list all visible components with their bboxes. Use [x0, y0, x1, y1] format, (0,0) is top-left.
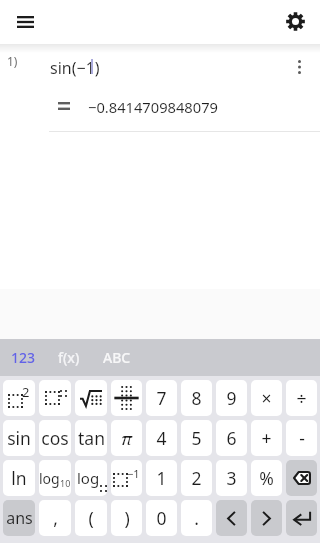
staticText: 4 — [156, 426, 167, 450]
button[interactable]: 3 — [216, 460, 247, 496]
staticText: cos — [41, 426, 69, 450]
button[interactable]: ( — [75, 500, 107, 536]
staticText: , — [53, 506, 58, 530]
staticText: π — [121, 427, 132, 450]
button[interactable]: + — [251, 420, 282, 456]
button[interactable]: Square — [3, 380, 35, 416]
button[interactable]: 7 — [146, 380, 177, 416]
button[interactable]: f(x) — [58, 339, 103, 376]
button[interactable]: ln — [3, 460, 35, 496]
button[interactable]: - — [286, 420, 317, 456]
button[interactable]: Fraction — [111, 380, 142, 416]
staticText: 8 — [191, 386, 202, 410]
button[interactable]: Right — [251, 500, 282, 536]
button[interactable]: tan — [75, 420, 107, 456]
staticText: × — [261, 386, 272, 410]
staticText: 1 — [156, 466, 167, 490]
staticText: 6 — [226, 426, 237, 450]
button[interactable]: More options — [285, 53, 313, 81]
button[interactable]: sin — [3, 420, 35, 456]
button[interactable]: ABC — [103, 339, 153, 376]
button[interactable]: 8 — [181, 380, 212, 416]
staticText: + — [261, 426, 272, 450]
staticText: ÷ — [296, 386, 307, 410]
button[interactable]: 4 — [146, 420, 177, 456]
staticText: 2 — [22, 383, 30, 401]
button[interactable]: log base 10 — [39, 460, 71, 496]
staticText: 0 — [156, 506, 167, 530]
button[interactable]: Power — [39, 380, 71, 416]
staticText: 10 — [60, 477, 71, 489]
staticText: sin(−1) — [50, 57, 100, 79]
staticText: ) — [124, 506, 130, 530]
staticText: 3 — [226, 466, 237, 490]
button[interactable]: log base — [75, 460, 107, 496]
button[interactable]: × — [251, 380, 282, 416]
button[interactable]: π — [111, 420, 142, 456]
staticText: - — [299, 426, 305, 450]
button[interactable]: 6 — [216, 420, 247, 456]
staticText: log — [77, 468, 100, 488]
staticText: ABC — [103, 348, 131, 367]
staticText: sin — [7, 426, 31, 450]
staticText: 123 — [11, 348, 36, 367]
button[interactable]: Backspace — [286, 460, 317, 496]
button[interactable]: ÷ — [286, 380, 317, 416]
staticText: 1) — [7, 53, 18, 69]
staticText: . — [194, 506, 199, 530]
staticText: ans — [6, 507, 33, 529]
button[interactable]: , — [39, 500, 71, 536]
button[interactable]: ans — [3, 500, 35, 536]
button[interactable]: 0 — [146, 500, 177, 536]
staticText: f(x) — [58, 348, 80, 367]
button[interactable]: 9 — [216, 380, 247, 416]
staticText: 2 — [191, 466, 202, 490]
button[interactable]: ) — [111, 500, 142, 536]
staticText: −1 — [127, 466, 140, 481]
button[interactable]: Left — [216, 500, 247, 536]
button[interactable]: Settings — [279, 6, 311, 38]
button[interactable]: 123 — [0, 339, 58, 376]
button[interactable]: cos — [39, 420, 71, 456]
staticText: tan — [78, 426, 105, 450]
button[interactable]: . — [181, 500, 212, 536]
staticText: ln — [11, 466, 27, 490]
button[interactable]: 5 — [181, 420, 212, 456]
button[interactable]: Enter — [286, 500, 317, 536]
staticText: % — [259, 466, 274, 490]
button[interactable]: % — [251, 460, 282, 496]
staticText: 5 — [191, 426, 202, 450]
button[interactable]: 1 — [146, 460, 177, 496]
button[interactable]: Square root — [75, 380, 107, 416]
button[interactable]: Inverse — [111, 460, 142, 496]
staticText: 9 — [226, 386, 237, 410]
button[interactable]: Menu — [9, 6, 41, 38]
staticText: log — [39, 469, 60, 488]
staticText: −0.8414709848079 — [88, 97, 218, 117]
button[interactable]: 2 — [181, 460, 212, 496]
staticText: ( — [88, 506, 94, 530]
staticText: 7 — [156, 386, 167, 410]
